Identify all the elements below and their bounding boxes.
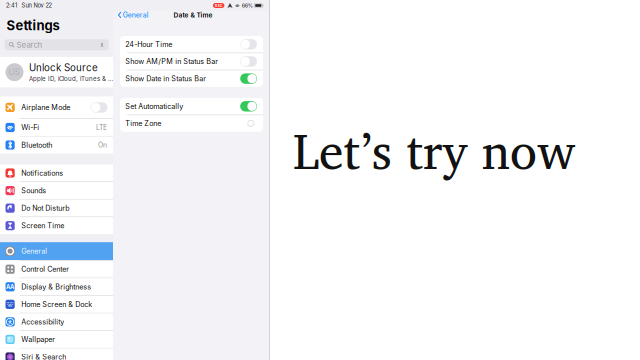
button[interactable]: General bbox=[0, 242, 113, 260]
staticText: Screen Time bbox=[21, 221, 64, 230]
staticText: Unlock Source bbox=[29, 62, 98, 74]
staticText: On bbox=[98, 141, 107, 149]
staticText: Settings bbox=[6, 17, 59, 33]
button[interactable]: 24-Hour Time bbox=[120, 36, 263, 53]
button[interactable]: Show AM/PM in Status Bar bbox=[120, 53, 263, 70]
button[interactable]: Airplane Mode bbox=[0, 96, 113, 118]
button[interactable]: General bbox=[113, 9, 149, 21]
button[interactable]: Siri & Search bbox=[0, 348, 113, 360]
staticText: Sun Nov 22 bbox=[21, 2, 51, 9]
button[interactable]: Wallpaper bbox=[0, 331, 113, 348]
staticText: Airplane Mode bbox=[21, 103, 70, 112]
staticText: 2:41 bbox=[6, 2, 17, 9]
button[interactable]: Bluetooth bbox=[0, 136, 113, 153]
staticText: US bbox=[8, 67, 20, 77]
staticText: General bbox=[21, 247, 47, 255]
staticText: 24-Hour Time bbox=[125, 40, 172, 49]
staticText: Wallpaper bbox=[21, 335, 55, 344]
button[interactable]: Do Not Disturb bbox=[0, 200, 113, 217]
staticText: Bluetooth bbox=[21, 141, 52, 149]
staticText: Date & Time bbox=[173, 11, 212, 19]
button[interactable]: Set Automatically bbox=[120, 98, 263, 115]
staticText: General bbox=[123, 11, 149, 19]
staticText: 66% bbox=[242, 2, 253, 9]
staticText: Let’s try now bbox=[293, 110, 576, 191]
staticText: Sounds bbox=[21, 186, 46, 195]
staticText: LTE bbox=[96, 123, 107, 132]
button[interactable]: AA bbox=[0, 278, 113, 295]
staticText: Notifications bbox=[21, 169, 63, 177]
staticText: Show AM/PM in Status Bar bbox=[125, 57, 218, 66]
staticText: Display & Brightness bbox=[21, 282, 91, 291]
staticText: AA bbox=[6, 283, 14, 290]
staticText: Set Automatically bbox=[125, 102, 183, 111]
button[interactable]: Show Date in Status Bar bbox=[120, 70, 263, 87]
staticText: Search bbox=[17, 40, 43, 50]
button[interactable]: Wi-Fi bbox=[0, 119, 113, 136]
button[interactable]: Accessibility bbox=[0, 313, 113, 330]
staticText: Home Screen & Dock bbox=[21, 300, 92, 309]
button[interactable]: Sounds bbox=[0, 182, 113, 199]
staticText: Time Zone bbox=[125, 119, 161, 128]
staticText: Wi-Fi bbox=[21, 123, 39, 132]
button[interactable]: Time Zone bbox=[120, 115, 263, 132]
button[interactable]: Home Screen & Dock bbox=[0, 296, 113, 313]
staticText: Do Not Disturb bbox=[21, 204, 69, 212]
staticText: Siri & Search bbox=[21, 353, 66, 360]
button[interactable]: Screen Time bbox=[0, 217, 113, 234]
staticText: Apple ID, iCloud, iTunes & App… bbox=[29, 75, 113, 82]
button[interactable]: Control Center bbox=[0, 261, 113, 278]
staticText: Control Center bbox=[21, 265, 69, 274]
button[interactable]: US bbox=[0, 57, 113, 87]
staticText: REC bbox=[215, 3, 223, 8]
staticText: Show Date in Status Bar bbox=[125, 74, 206, 83]
button[interactable]: Notifications bbox=[0, 164, 113, 181]
staticText: Accessibility bbox=[21, 317, 64, 326]
